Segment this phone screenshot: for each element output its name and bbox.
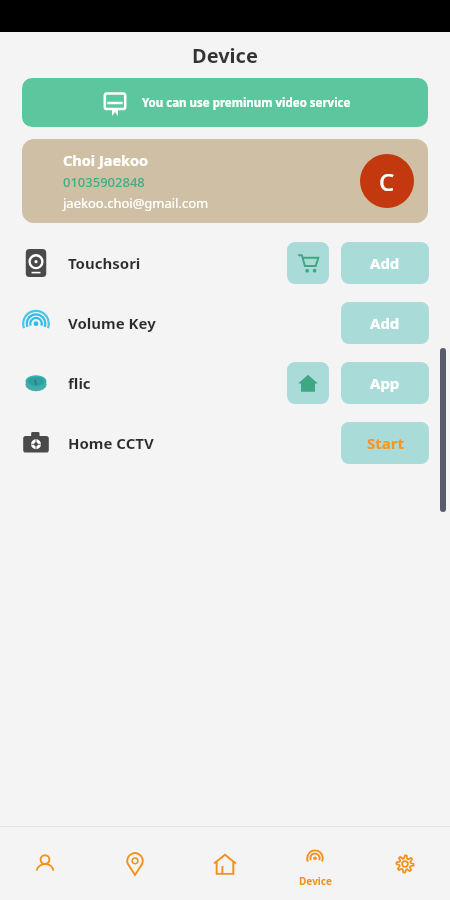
button[interactable]: Settings <box>360 827 450 900</box>
button[interactable]: Home CCTV <box>0 413 450 473</box>
button[interactable]: Add <box>341 302 429 344</box>
button[interactable]: Choi Jaekoo <box>22 139 428 223</box>
button[interactable]: Home app <box>287 362 329 404</box>
staticText: Volume Key <box>68 313 156 333</box>
button[interactable]: Profile avatar <box>360 154 414 208</box>
staticText: flic <box>68 373 91 393</box>
button[interactable]: App <box>341 362 429 404</box>
staticText: Device <box>192 42 258 69</box>
button[interactable]: Places <box>90 827 180 900</box>
staticText: App <box>370 373 400 393</box>
button[interactable]: Account <box>0 827 90 900</box>
button[interactable]: Buy <box>287 242 329 284</box>
button[interactable]: flic <box>0 353 450 413</box>
staticText: Add <box>370 313 400 333</box>
staticText: Start <box>367 433 404 453</box>
staticText: Home CCTV <box>68 433 154 453</box>
staticText: Add <box>370 253 400 273</box>
button[interactable]: You can use preminum video service <box>22 78 428 127</box>
staticText: Touchsori <box>68 253 141 273</box>
staticText: C <box>379 165 395 198</box>
staticText: 01035902848 <box>63 173 145 191</box>
button[interactable]: Touchsori <box>0 233 450 293</box>
staticText: jaekoo.choi@gmail.com <box>63 194 209 212</box>
button[interactable]: Home <box>180 827 270 900</box>
staticText: Device <box>299 874 332 888</box>
button[interactable]: Add <box>341 242 429 284</box>
button[interactable]: Device <box>270 827 360 900</box>
staticText: You can use preminum video service <box>142 95 351 111</box>
button[interactable]: Start <box>341 422 429 464</box>
staticText: Choi Jaekoo <box>63 150 149 170</box>
button[interactable]: Volume Key <box>0 293 450 353</box>
